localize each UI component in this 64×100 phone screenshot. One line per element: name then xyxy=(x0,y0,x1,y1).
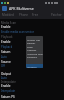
staticText: Napster xyxy=(27,48,37,51)
button[interactable]: Napster xyxy=(26,48,43,51)
button[interactable]: Free Spotify xyxy=(32,13,48,17)
staticText: Saturn PS xyxy=(1,95,15,99)
button[interactable]: Patcher xyxy=(48,13,64,17)
staticText: Patcher xyxy=(51,13,62,17)
staticText: Phone xyxy=(19,13,29,17)
button[interactable]: Amazon Music xyxy=(26,64,43,68)
staticText: Amazon Music xyxy=(27,65,43,68)
button[interactable]: YouTube Mus xyxy=(26,52,43,55)
staticText: Saturn xyxy=(1,50,11,54)
staticText: Enable xyxy=(1,40,11,44)
staticText: YouTube Mus xyxy=(27,52,43,55)
button[interactable]: Modded xyxy=(0,13,16,17)
staticText: Interpolate xyxy=(1,80,16,84)
button[interactable]: Pandora xyxy=(26,55,43,58)
staticText: Output xyxy=(1,72,12,76)
staticText: Tidal xyxy=(27,45,33,48)
staticText: Off xyxy=(1,64,5,68)
staticText: Deezer xyxy=(27,41,36,44)
button[interactable]: Spotify Lite 1.9 xyxy=(26,38,43,41)
staticText: Free Spotify xyxy=(32,13,48,17)
staticText: APK Multiverse xyxy=(9,6,34,11)
staticText: Auto xyxy=(1,76,7,80)
staticText: Media Scan xyxy=(1,21,17,25)
staticText: Playback xyxy=(1,45,13,49)
staticText: Modded xyxy=(2,13,14,17)
staticText: Enable media scan service xyxy=(1,30,35,34)
button[interactable]: APK Multiverse xyxy=(0,5,64,12)
staticText: Enable xyxy=(1,84,11,88)
button[interactable]: Deezer xyxy=(26,41,43,44)
staticText: Auto xyxy=(1,55,7,59)
staticText: Spotify Lite 1.9 xyxy=(27,38,43,41)
staticText: Playback xyxy=(1,35,13,39)
button[interactable]: Tidal xyxy=(26,45,43,48)
staticText: Interpolate xyxy=(1,89,16,93)
staticText: Pandora xyxy=(27,55,37,58)
staticText: Source xyxy=(1,60,11,64)
staticText: Enable xyxy=(1,25,11,29)
button[interactable]: Phone xyxy=(16,13,32,17)
